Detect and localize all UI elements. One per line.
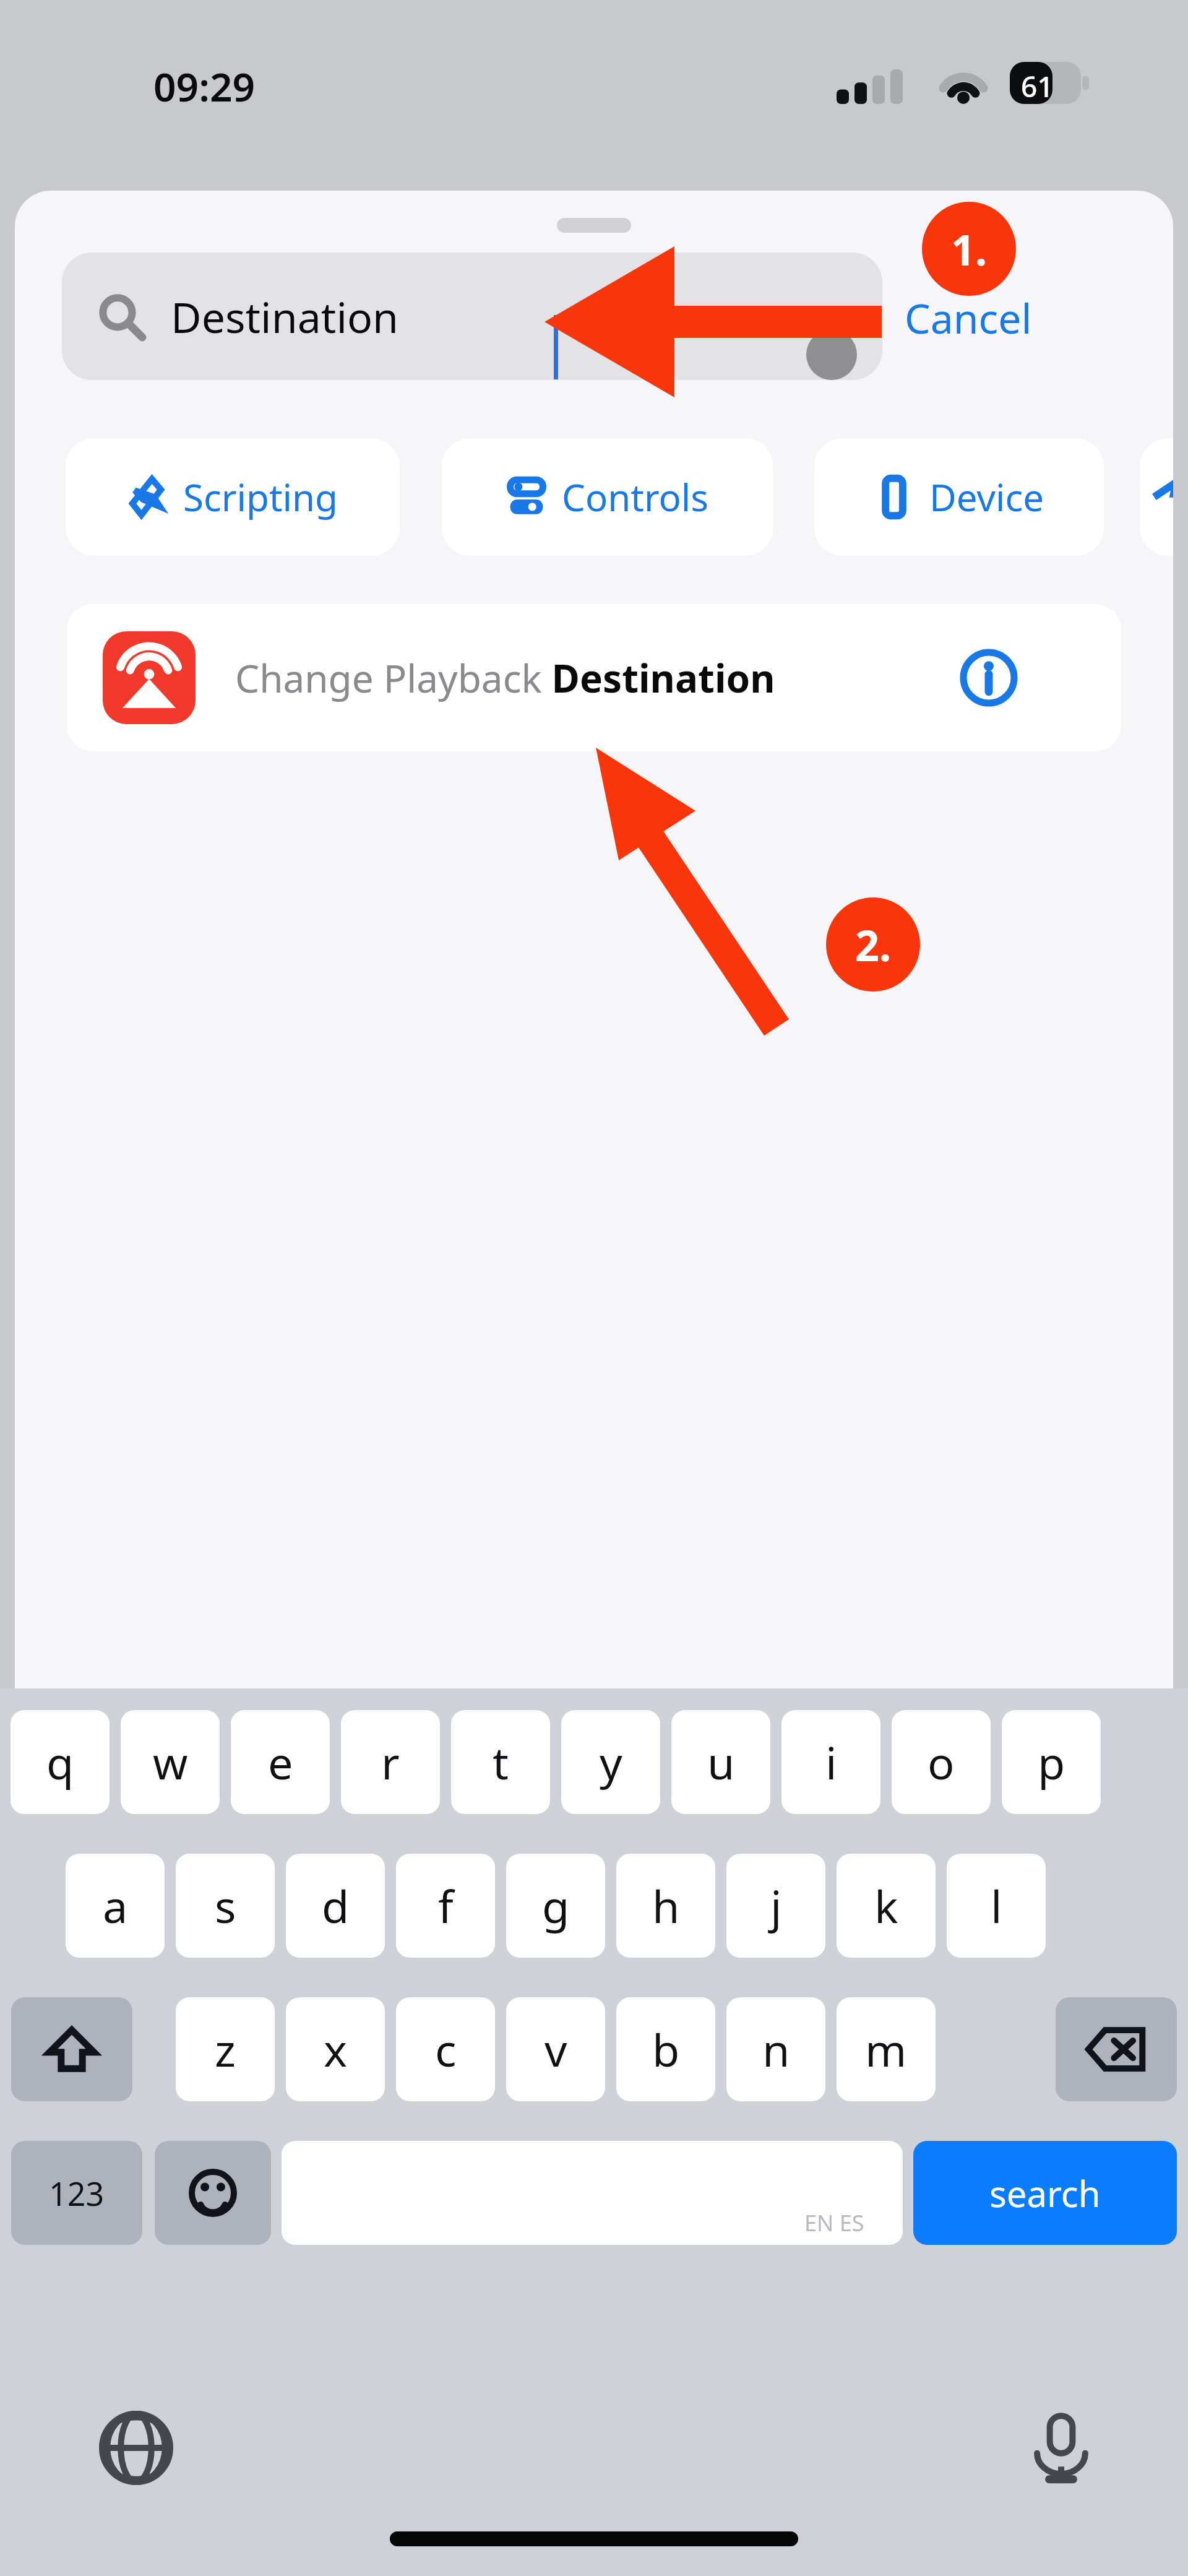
- staticText: h: [652, 1875, 680, 1936]
- button[interactable]: Destination: [62, 253, 882, 380]
- staticText: 61: [1021, 67, 1054, 106]
- button[interactable]: Next keyboard: [90, 2401, 183, 2494]
- button[interactable]: Clear text: [806, 329, 857, 380]
- button[interactable]: v: [506, 1997, 605, 2101]
- staticText: 2.: [855, 916, 892, 974]
- button[interactable]: f: [396, 1854, 495, 1958]
- button[interactable]: i: [781, 1710, 880, 1814]
- staticText: y: [600, 1732, 622, 1792]
- staticText: Change Playback Destination: [235, 652, 775, 704]
- button[interactable]: e: [231, 1710, 330, 1814]
- button[interactable]: s: [176, 1854, 275, 1958]
- staticText: Scripting: [183, 472, 338, 522]
- staticText: 123: [49, 2171, 105, 2215]
- staticText: j: [770, 1875, 782, 1936]
- staticText: f: [438, 1875, 454, 1936]
- button[interactable]: Shift: [11, 1997, 132, 2101]
- button[interactable]: Emoji: [155, 2141, 271, 2245]
- button[interactable]: p: [1002, 1710, 1101, 1814]
- button[interactable]: More info: [952, 641, 1026, 715]
- button[interactable]: EN ES: [282, 2141, 903, 2245]
- button[interactable]: k: [837, 1854, 936, 1958]
- staticText: n: [762, 2019, 790, 2080]
- staticText: EN ES: [804, 2208, 864, 2238]
- staticText: p: [1038, 1732, 1065, 1792]
- staticText: i: [825, 1732, 837, 1792]
- button[interactable]: b: [616, 1997, 715, 2101]
- staticText: Destination: [171, 288, 399, 345]
- button[interactable]: x: [286, 1997, 385, 2101]
- button[interactable]: d: [286, 1854, 385, 1958]
- staticText: v: [544, 2019, 567, 2080]
- staticText: Controls: [562, 472, 709, 522]
- button[interactable]: r: [341, 1710, 440, 1814]
- button[interactable]: Scripting: [66, 438, 400, 556]
- button[interactable]: m: [837, 1997, 936, 2101]
- staticText: d: [322, 1875, 350, 1936]
- staticText: k: [874, 1875, 898, 1936]
- staticText: x: [324, 2019, 348, 2080]
- button[interactable]: Device: [814, 438, 1104, 556]
- button[interactable]: t: [451, 1710, 550, 1814]
- button[interactable]: w: [121, 1710, 220, 1814]
- staticText: w: [153, 1732, 188, 1792]
- staticText: Device: [929, 472, 1044, 522]
- button[interactable]: 123: [11, 2141, 142, 2245]
- button[interactable]: g: [506, 1854, 605, 1958]
- button[interactable]: h: [616, 1854, 715, 1958]
- staticText: u: [707, 1732, 735, 1792]
- staticText: t: [493, 1732, 509, 1792]
- staticText: r: [381, 1732, 400, 1792]
- button[interactable]: Backspace: [1056, 1997, 1177, 2101]
- button[interactable]: j: [726, 1854, 825, 1958]
- button[interactable]: Cancel: [905, 290, 1032, 345]
- staticText: m: [865, 2019, 907, 2080]
- button[interactable]: a: [66, 1854, 165, 1958]
- staticText: s: [215, 1875, 236, 1936]
- button[interactable]: Change Playback Destination: [67, 604, 1121, 751]
- button[interactable]: u: [671, 1710, 770, 1814]
- button[interactable]: c: [396, 1997, 495, 2101]
- button[interactable]: o: [892, 1710, 991, 1814]
- button[interactable]: Dictation: [1015, 2401, 1108, 2494]
- staticText: o: [928, 1732, 955, 1792]
- button[interactable]: n: [726, 1997, 825, 2101]
- button[interactable]: search: [913, 2141, 1177, 2245]
- staticText: 09:29: [153, 59, 256, 113]
- button[interactable]: y: [561, 1710, 660, 1814]
- staticText: e: [268, 1732, 293, 1792]
- staticText: Cancel: [905, 290, 1032, 345]
- staticText: 1.: [951, 220, 988, 278]
- button[interactable]: z: [176, 1997, 275, 2101]
- staticText: l: [991, 1875, 1002, 1936]
- staticText: g: [542, 1875, 570, 1936]
- button[interactable]: q: [11, 1710, 110, 1814]
- staticText: b: [652, 2019, 680, 2080]
- staticText: q: [46, 1732, 74, 1792]
- staticText: z: [215, 2019, 236, 2080]
- button[interactable]: [1140, 438, 1173, 556]
- staticText: search: [989, 2169, 1101, 2218]
- button[interactable]: l: [947, 1854, 1046, 1958]
- staticText: c: [435, 2019, 457, 2080]
- staticText: a: [103, 1875, 128, 1936]
- button[interactable]: Controls: [442, 438, 773, 556]
